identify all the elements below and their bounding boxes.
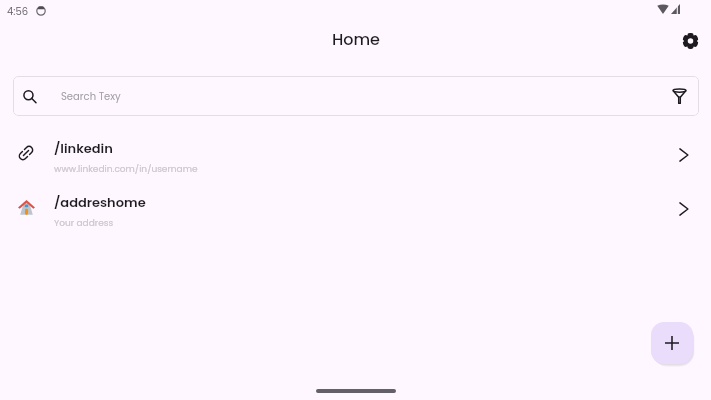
staticText: /addreshome	[54, 193, 146, 211]
staticText: Your address	[54, 217, 114, 230]
staticText: Search Texy	[61, 89, 121, 103]
button[interactable]: Search Texy	[13, 76, 699, 116]
staticText: www.linkedin.com/in/username	[54, 163, 198, 176]
button[interactable]: Add	[651, 322, 693, 364]
button[interactable]: /addreshome	[0, 184, 711, 238]
button[interactable]: /linkedin	[0, 130, 711, 184]
staticText: 4:56	[7, 4, 29, 18]
staticText: /linkedin	[54, 139, 113, 157]
button[interactable]: Settings	[674, 25, 706, 57]
staticText: Home	[332, 28, 380, 50]
button[interactable]: Filter	[663, 80, 695, 112]
